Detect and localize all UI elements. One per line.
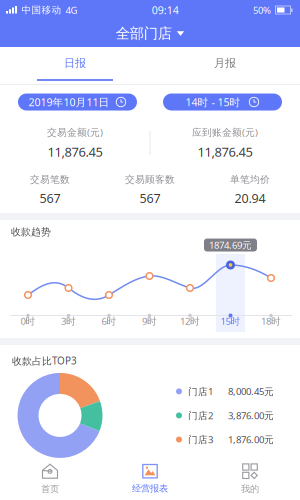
button[interactable]: 2019年10月11日 — [18, 93, 137, 110]
staticText: 567 — [139, 190, 160, 207]
button[interactable]: 经营报表 — [100, 458, 200, 500]
staticText: 3,876.00元 — [228, 409, 274, 422]
staticText: 月报 — [214, 56, 236, 70]
staticText: 交易金额(元) — [47, 126, 103, 139]
button[interactable]: 日报 — [0, 47, 150, 85]
staticText: 12时 — [180, 314, 200, 328]
button[interactable]: 全部门店 — [0, 20, 300, 47]
staticText: 8,000.45元 — [228, 385, 274, 398]
staticText: 中国移动 — [21, 4, 61, 16]
button[interactable]: 14时 - 15时 — [163, 93, 282, 110]
staticText: 14时 - 15时 — [185, 95, 240, 109]
button[interactable]: 月报 — [150, 47, 300, 85]
staticText: 门店3 — [188, 433, 213, 446]
staticText: 18时 — [261, 314, 281, 328]
staticText: 567 — [39, 190, 60, 207]
staticText: 经营报表 — [132, 483, 168, 494]
staticText: 全部门店 — [116, 24, 172, 42]
staticText: 11,876.45 — [47, 143, 102, 160]
staticText: 0时 — [20, 314, 35, 328]
button[interactable]: 我的 — [200, 458, 300, 500]
staticText: 门店1 — [188, 385, 213, 398]
button[interactable]: 首页 — [0, 458, 100, 500]
staticText: 交易笔数 — [30, 173, 70, 186]
staticText: 50% — [253, 3, 271, 17]
staticText: 09:14 — [152, 3, 179, 17]
staticText: 收款占比TOP3 — [12, 354, 77, 367]
staticText: 交易顾客数 — [125, 173, 175, 186]
staticText: 应到账金额(元) — [192, 126, 258, 139]
staticText: 6时 — [101, 314, 116, 328]
staticText: 3时 — [61, 314, 76, 328]
staticText: 日报 — [64, 56, 86, 70]
staticText: 单笔均价 — [230, 173, 270, 186]
staticText: 11,876.45 — [197, 143, 252, 160]
staticText: 15时 — [220, 314, 240, 328]
staticText: 20.94 — [234, 190, 265, 207]
staticText: 2019年10月11日 — [28, 95, 109, 109]
staticText: 4G — [65, 3, 77, 17]
staticText: 我的 — [241, 483, 259, 495]
staticText: 收款趋势 — [11, 226, 51, 238]
staticText: 1,876.00元 — [228, 433, 274, 446]
staticText: 1874.69元 — [209, 238, 252, 252]
staticText: 首页 — [41, 483, 59, 495]
staticText: 9时 — [142, 314, 157, 328]
staticText: 门店2 — [188, 409, 213, 422]
